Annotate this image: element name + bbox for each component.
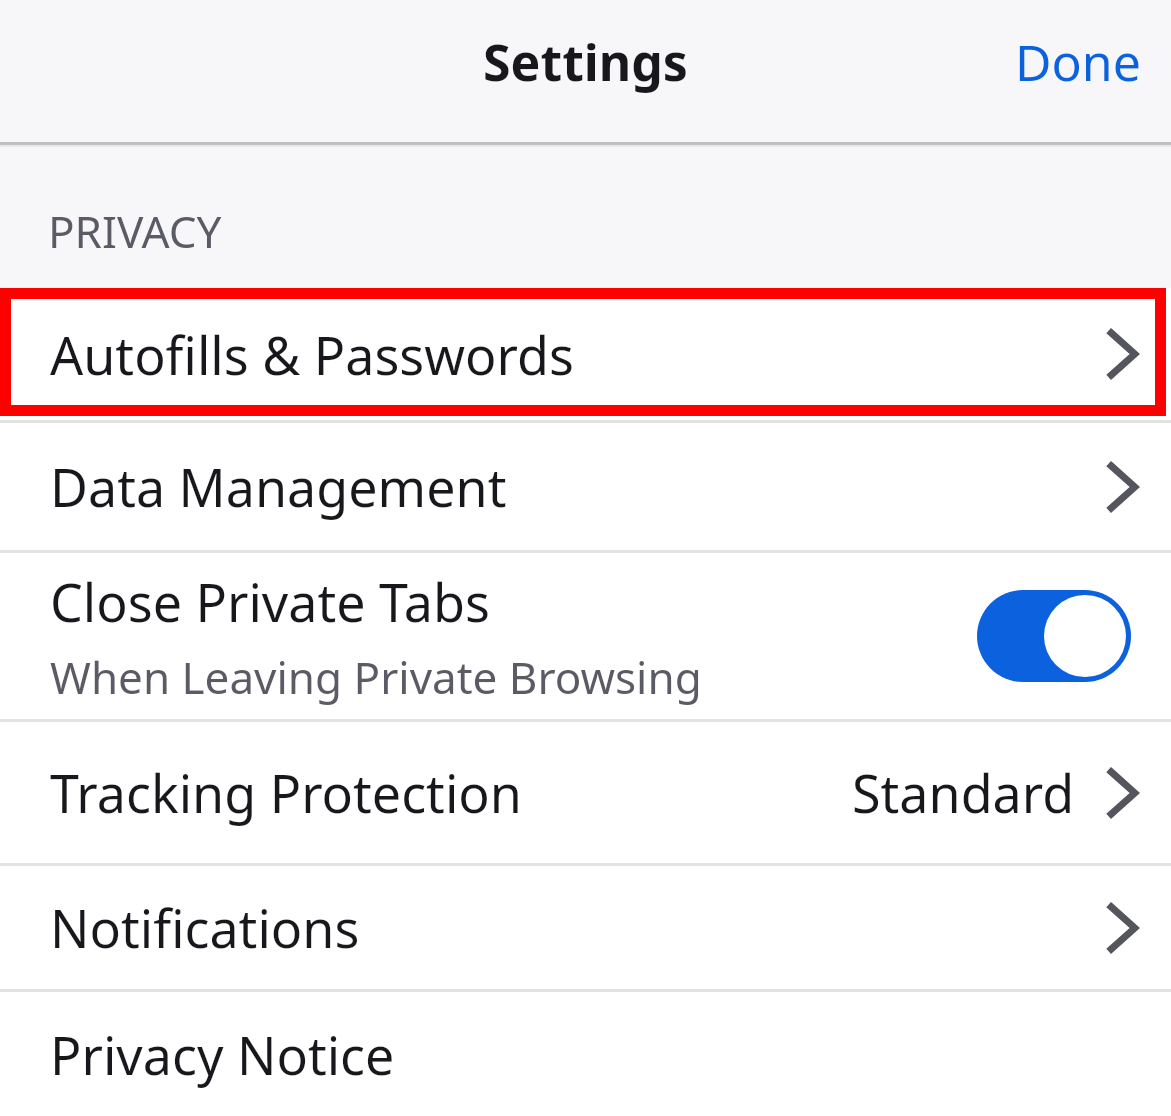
button[interactable]: Tracking Protection xyxy=(0,722,1171,863)
button[interactable]: Autofills & Passwords xyxy=(0,288,1171,420)
button[interactable]: Data Management xyxy=(0,423,1171,550)
staticText: Privacy Notice xyxy=(50,1019,395,1090)
staticText: Settings xyxy=(483,28,688,96)
staticText: Autofills & Passwords xyxy=(50,319,574,390)
staticText: Data Management xyxy=(50,451,507,522)
staticText: Notifications xyxy=(50,892,360,963)
button[interactable]: Notifications xyxy=(0,866,1171,989)
button[interactable]: Close Private Tabs xyxy=(0,553,1171,719)
button[interactable]: Close Private Tabs toggle xyxy=(977,590,1131,682)
staticText: PRIVACY xyxy=(48,201,222,261)
staticText: Tracking Protection xyxy=(50,757,522,828)
staticText: Done xyxy=(1015,28,1141,96)
button[interactable]: Done xyxy=(985,14,1171,110)
button[interactable]: Privacy Notice xyxy=(0,992,1171,1116)
staticText: Close Private Tabs xyxy=(50,566,490,637)
staticText: Standard xyxy=(852,757,1075,828)
staticText: When Leaving Private Browsing xyxy=(50,647,702,707)
